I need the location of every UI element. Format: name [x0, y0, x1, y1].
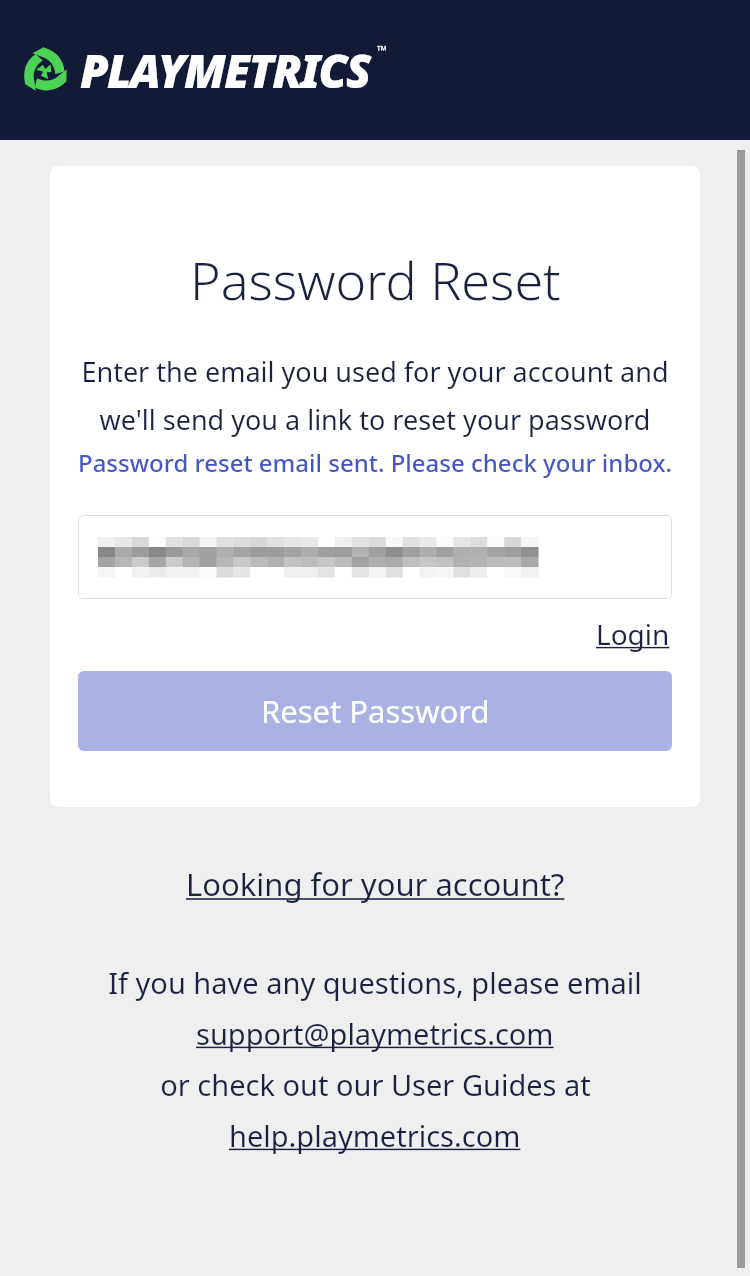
staticText: support@playmetrics.com	[196, 1014, 554, 1053]
staticText: Login	[596, 615, 670, 653]
staticText: Reset Password	[261, 690, 490, 732]
staticText: help.playmetrics.com	[229, 1116, 521, 1155]
staticText: or check out our User Guides at	[160, 1065, 591, 1104]
button[interactable]: Reset Password	[78, 671, 672, 751]
button[interactable]: Login	[594, 613, 672, 655]
button[interactable]: Email address	[78, 515, 672, 599]
staticText: Password reset email sent. Please check …	[68, 446, 682, 479]
staticText: If you have any questions, please email	[108, 963, 642, 1002]
staticText: PLAYMETRICS	[80, 39, 370, 102]
button[interactable]: Looking for your account?	[186, 863, 565, 905]
button[interactable]: support@playmetrics.com	[196, 1014, 554, 1053]
staticText: ™	[377, 41, 388, 59]
staticText: Looking for your account?	[186, 863, 565, 905]
button[interactable]: help.playmetrics.com	[229, 1116, 521, 1155]
staticText: Password Reset	[190, 244, 561, 315]
button[interactable]: PlayMetrics home	[18, 39, 370, 102]
staticText: Enter the email you used for your accoun…	[74, 353, 676, 438]
